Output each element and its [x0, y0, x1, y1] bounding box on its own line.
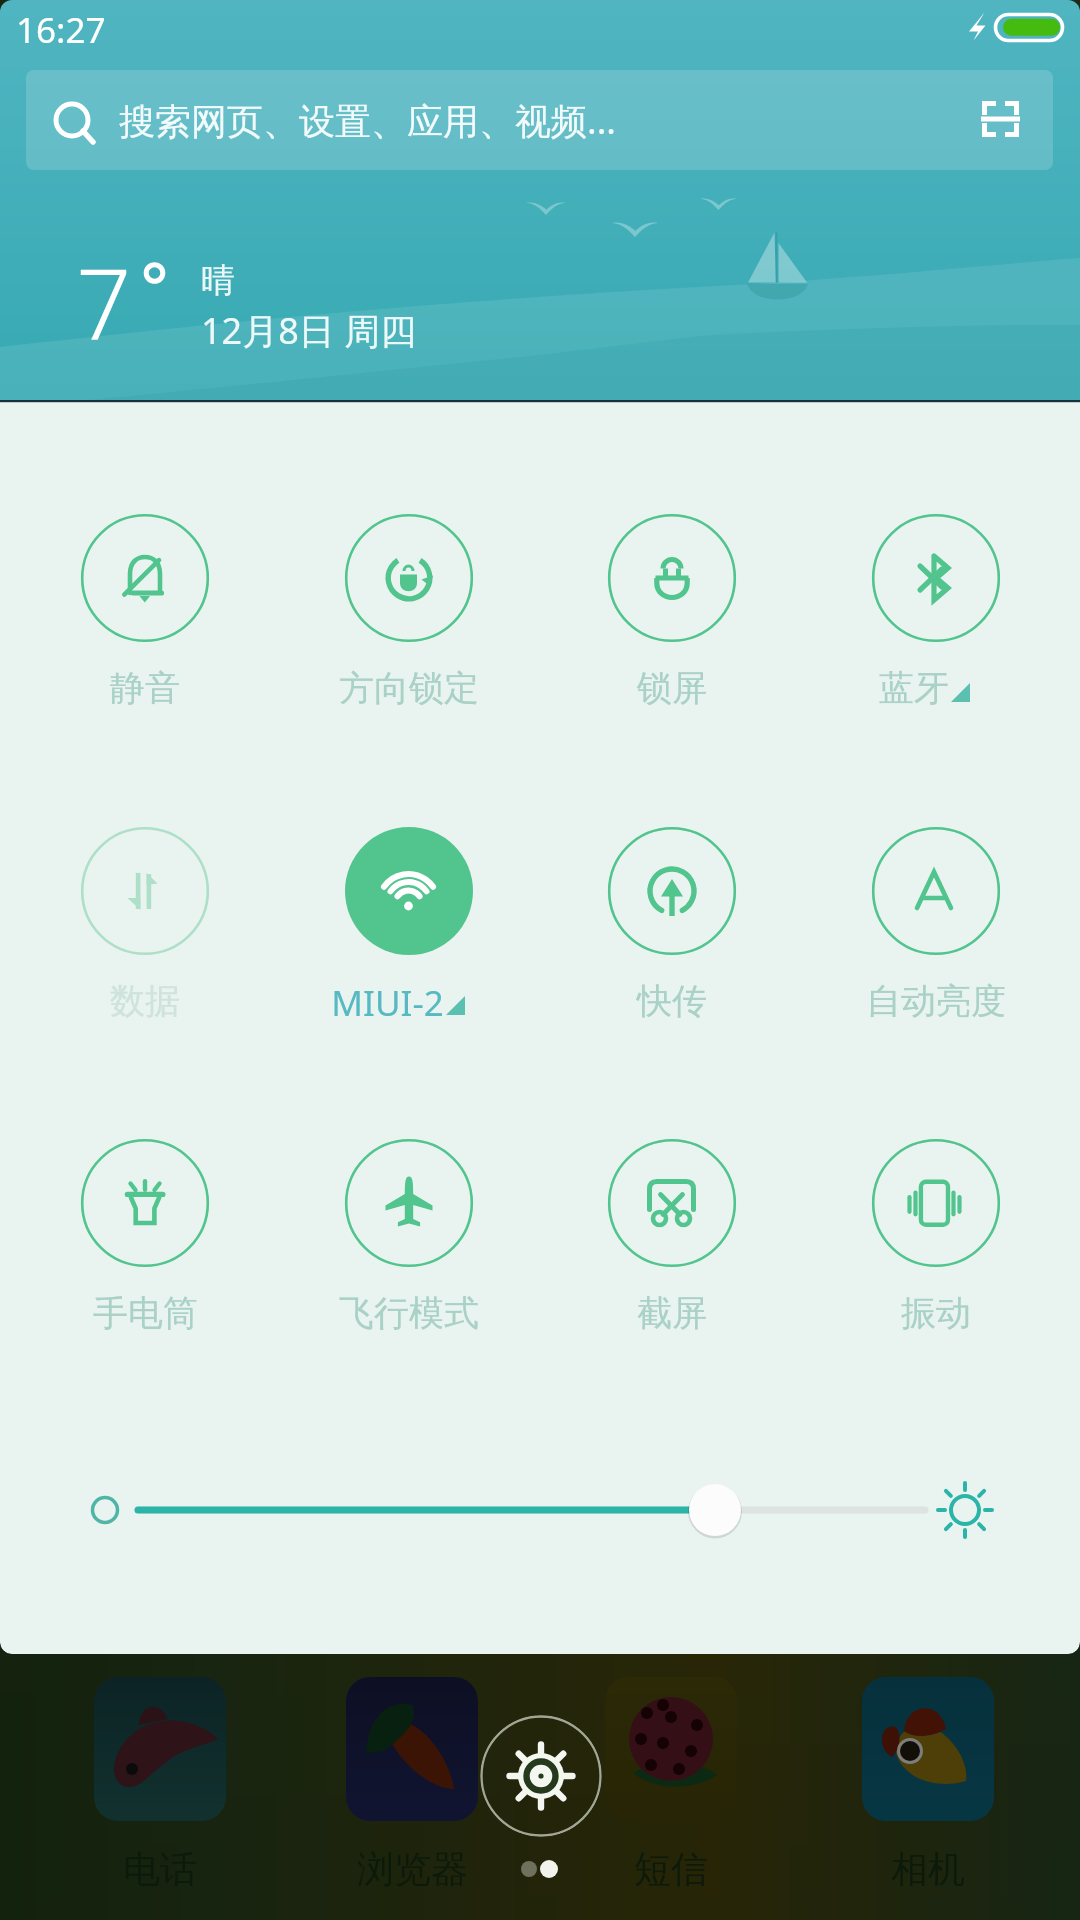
staticText: 相机: [891, 1846, 965, 1893]
staticText: 浏览器: [357, 1846, 468, 1893]
staticText: 电话: [123, 1846, 197, 1893]
button[interactable]: 方向锁定: [309, 504, 509, 714]
staticText: 截屏: [637, 1291, 707, 1335]
staticText: 数据: [110, 979, 180, 1023]
button[interactable]: 振动: [836, 1129, 1036, 1339]
staticText: 晴: [201, 259, 235, 302]
button[interactable]: 飞行模式: [309, 1129, 509, 1339]
staticText: 手电筒: [93, 1291, 198, 1335]
button[interactable]: 搜索网页、设置、应用、视频...: [26, 70, 1053, 170]
button[interactable]: Brightness: [80, 1465, 1000, 1555]
staticText: 短信: [634, 1846, 708, 1893]
button[interactable]: 静音: [45, 504, 245, 714]
button[interactable]: 数据: [45, 817, 245, 1027]
button[interactable]: 浏览器: [302, 1846, 522, 1900]
button[interactable]: App vault: [480, 1715, 602, 1837]
button[interactable]: 截屏: [572, 1129, 772, 1339]
button[interactable]: Scan: [974, 93, 1028, 147]
staticText: 锁屏: [637, 666, 707, 710]
staticText: 自动亮度: [866, 979, 1006, 1023]
button[interactable]: 快传: [572, 817, 772, 1027]
button[interactable]: MIUI-2: [309, 817, 509, 1027]
staticText: 7: [76, 236, 132, 368]
staticText: 振动: [901, 1291, 971, 1335]
button[interactable]: 蓝牙: [836, 504, 1036, 714]
button[interactable]: 锁屏: [572, 504, 772, 714]
staticText: 方向锁定: [339, 666, 479, 710]
button[interactable]: 短信: [561, 1846, 781, 1900]
staticText: MIUI-2: [331, 979, 444, 1027]
button[interactable]: 自动亮度: [836, 817, 1036, 1027]
staticText: 12月8日 周四: [201, 306, 417, 355]
button[interactable]: 相机: [818, 1846, 1038, 1900]
staticText: 蓝牙: [879, 666, 949, 710]
button[interactable]: 手电筒: [45, 1129, 245, 1339]
staticText: 16:27: [16, 6, 106, 54]
staticText: 快传: [637, 979, 707, 1023]
staticText: 搜索网页、设置、应用、视频...: [119, 96, 616, 145]
staticText: 飞行模式: [339, 1291, 479, 1335]
staticText: 静音: [110, 666, 180, 710]
